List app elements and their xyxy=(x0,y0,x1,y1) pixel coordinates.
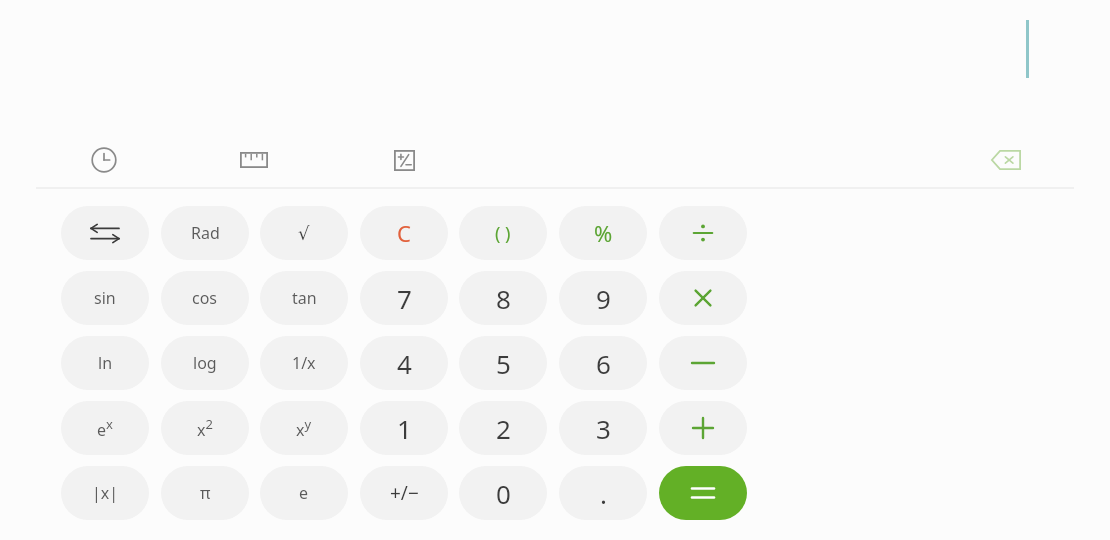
staticText: 7 xyxy=(397,281,412,316)
staticText: e xyxy=(299,482,309,504)
staticText: 4 xyxy=(397,346,412,381)
staticText: 5 xyxy=(496,346,511,381)
button[interactable]: Multiply xyxy=(659,271,747,325)
staticText: % xyxy=(594,218,613,248)
staticText: sin xyxy=(94,287,116,309)
button[interactable]: Unit converter xyxy=(230,136,278,184)
button[interactable]: Divide xyxy=(659,206,747,260)
staticText: 3 xyxy=(596,411,611,446)
button[interactable]: Backspace xyxy=(982,136,1030,184)
button[interactable]: 1 xyxy=(360,401,448,455)
button[interactable]: sin xyxy=(61,271,149,325)
button[interactable]: 7 xyxy=(360,271,448,325)
button[interactable]: log xyxy=(161,336,249,390)
button[interactable]: e xyxy=(260,466,348,520)
button[interactable]: π xyxy=(161,466,249,520)
button[interactable]: Rad xyxy=(161,206,249,260)
button[interactable]: tan xyxy=(260,271,348,325)
button[interactable]: 6 xyxy=(559,336,647,390)
button[interactable]: 1/x xyxy=(260,336,348,390)
button[interactable]: cos xyxy=(161,271,249,325)
staticText: log xyxy=(193,352,217,374)
button[interactable]: 0 xyxy=(459,466,547,520)
staticText: |x| xyxy=(92,482,119,504)
staticText: √ xyxy=(298,223,310,244)
button[interactable]: 8 xyxy=(459,271,547,325)
button[interactable]: Swap xyxy=(61,206,149,260)
staticText: +/− xyxy=(390,480,419,506)
button[interactable]: ( ) xyxy=(459,206,547,260)
button[interactable]: Subtract xyxy=(659,336,747,390)
button[interactable]: |x| xyxy=(61,466,149,520)
staticText: 1/x xyxy=(292,352,316,374)
button[interactable]: 5 xyxy=(459,336,547,390)
button[interactable]: Equals xyxy=(659,466,747,520)
staticText: 1 xyxy=(397,411,412,446)
button[interactable]: 9 xyxy=(559,271,647,325)
button[interactable]: xy xyxy=(260,401,348,455)
button[interactable]: History xyxy=(80,136,128,184)
staticText: Rad xyxy=(191,222,220,244)
staticText: C xyxy=(397,218,411,248)
button[interactable]: 4 xyxy=(360,336,448,390)
staticText: ( ) xyxy=(495,221,511,246)
staticText: ex xyxy=(97,415,113,441)
staticText: tan xyxy=(292,287,317,309)
button[interactable]: 2 xyxy=(459,401,547,455)
button[interactable]: ex xyxy=(61,401,149,455)
button[interactable]: √ xyxy=(260,206,348,260)
button[interactable]: Add xyxy=(659,401,747,455)
button[interactable]: +/− xyxy=(360,466,448,520)
staticText: 6 xyxy=(596,346,611,381)
button[interactable]: Sign options xyxy=(380,136,428,184)
staticText: 9 xyxy=(596,281,611,316)
staticText: xy xyxy=(296,415,312,441)
staticText: π xyxy=(200,482,211,504)
button[interactable]: C xyxy=(360,206,448,260)
staticText: 8 xyxy=(496,281,511,316)
staticText: . xyxy=(600,476,607,511)
button[interactable]: ln xyxy=(61,336,149,390)
button[interactable]: 3 xyxy=(559,401,647,455)
staticText: cos xyxy=(192,287,218,309)
staticText: x2 xyxy=(197,415,213,441)
button[interactable]: x2 xyxy=(161,401,249,455)
staticText: 2 xyxy=(496,411,511,446)
staticText: ln xyxy=(98,352,113,374)
button[interactable]: . xyxy=(559,466,647,520)
button[interactable]: % xyxy=(559,206,647,260)
staticText: 0 xyxy=(496,476,511,511)
